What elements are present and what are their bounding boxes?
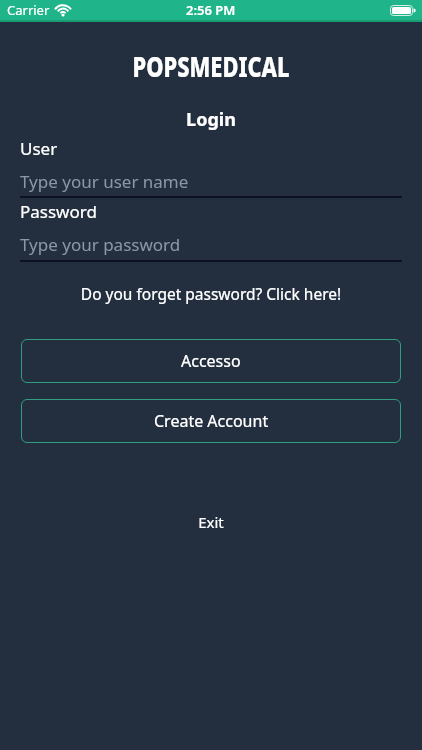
button[interactable]: Create Account xyxy=(21,399,401,443)
staticText: Accesso xyxy=(181,350,241,372)
staticText: Type your user name xyxy=(20,170,189,193)
button[interactable]: Accesso xyxy=(21,339,401,383)
button[interactable]: Type your password xyxy=(20,233,402,256)
staticText: Type your password xyxy=(20,233,181,256)
staticText: POPSMEDICAL xyxy=(46,47,376,85)
staticText: Carrier xyxy=(7,1,50,19)
staticText: Login xyxy=(0,107,422,132)
staticText: Create Account xyxy=(154,410,269,432)
staticText: Password xyxy=(20,200,97,223)
staticText: User xyxy=(20,137,58,160)
button[interactable]: Do you forget password? Click here! xyxy=(0,283,422,304)
button[interactable]: Exit xyxy=(0,512,422,532)
staticText: 2:56 PM xyxy=(186,1,236,19)
button[interactable]: Type your user name xyxy=(20,170,402,193)
